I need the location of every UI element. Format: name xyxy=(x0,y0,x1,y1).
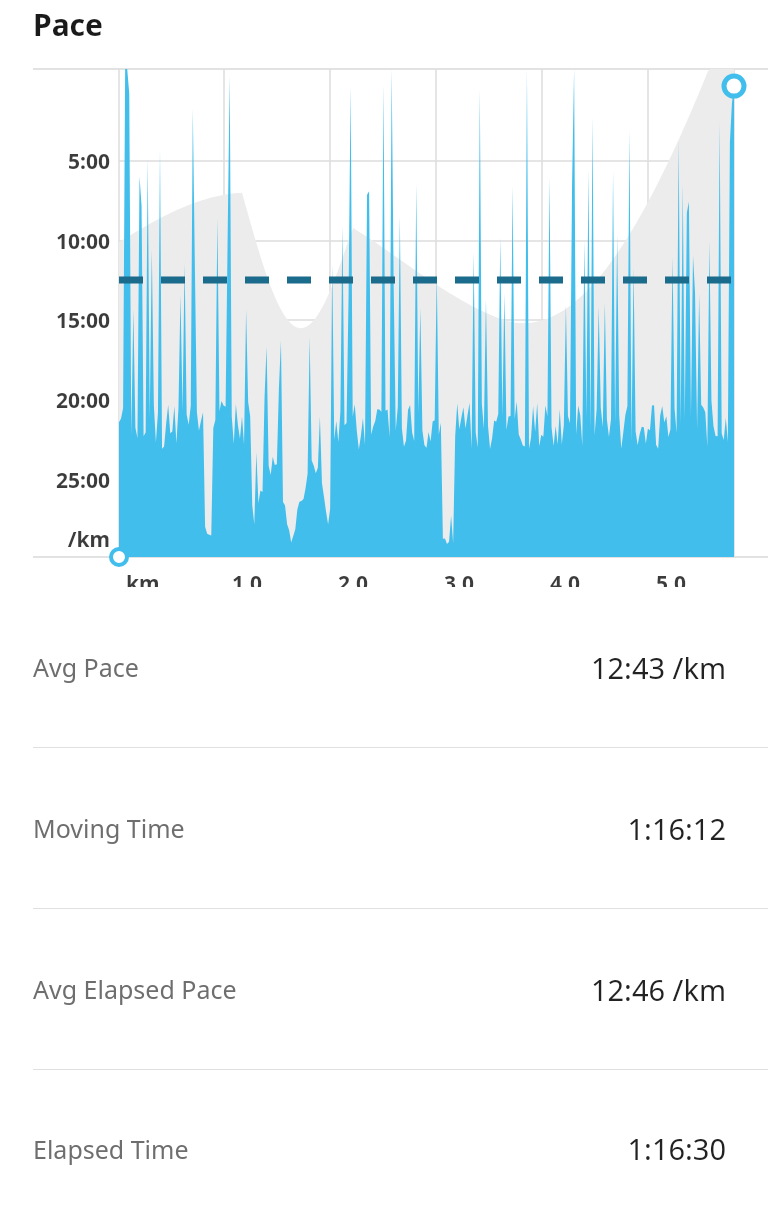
staticText: 2.0 xyxy=(338,569,368,587)
button[interactable]: Avg Elapsed Pace xyxy=(0,909,768,1069)
staticText: 5.0 xyxy=(656,569,686,587)
staticText: Avg Elapsed Pace xyxy=(33,972,237,1006)
button[interactable]: Avg Pace xyxy=(0,587,768,747)
staticText: 15:00 xyxy=(0,306,110,335)
staticText: 20:00 xyxy=(0,386,110,415)
staticText: 3.0 xyxy=(444,569,474,587)
button[interactable]: Elapsed Time xyxy=(0,1070,768,1227)
staticText: 1:16:30 xyxy=(627,1129,726,1168)
staticText: 4.0 xyxy=(550,569,580,587)
staticText: km xyxy=(126,569,160,587)
staticText: 12:43 /km xyxy=(590,648,726,687)
staticText: /km xyxy=(0,525,110,554)
staticText: Avg Pace xyxy=(33,650,139,684)
staticText: Pace xyxy=(33,4,103,45)
staticText: Moving Time xyxy=(33,811,185,845)
staticText: 10:00 xyxy=(0,227,110,256)
button[interactable]: Moving Time xyxy=(0,748,768,908)
staticText: 5:00 xyxy=(0,147,110,176)
staticText: 1:16:12 xyxy=(627,809,726,848)
staticText: 12:46 /km xyxy=(590,970,726,1009)
staticText: Elapsed Time xyxy=(33,1132,189,1166)
staticText: 25:00 xyxy=(0,466,110,495)
staticText: 1.0 xyxy=(232,569,262,587)
